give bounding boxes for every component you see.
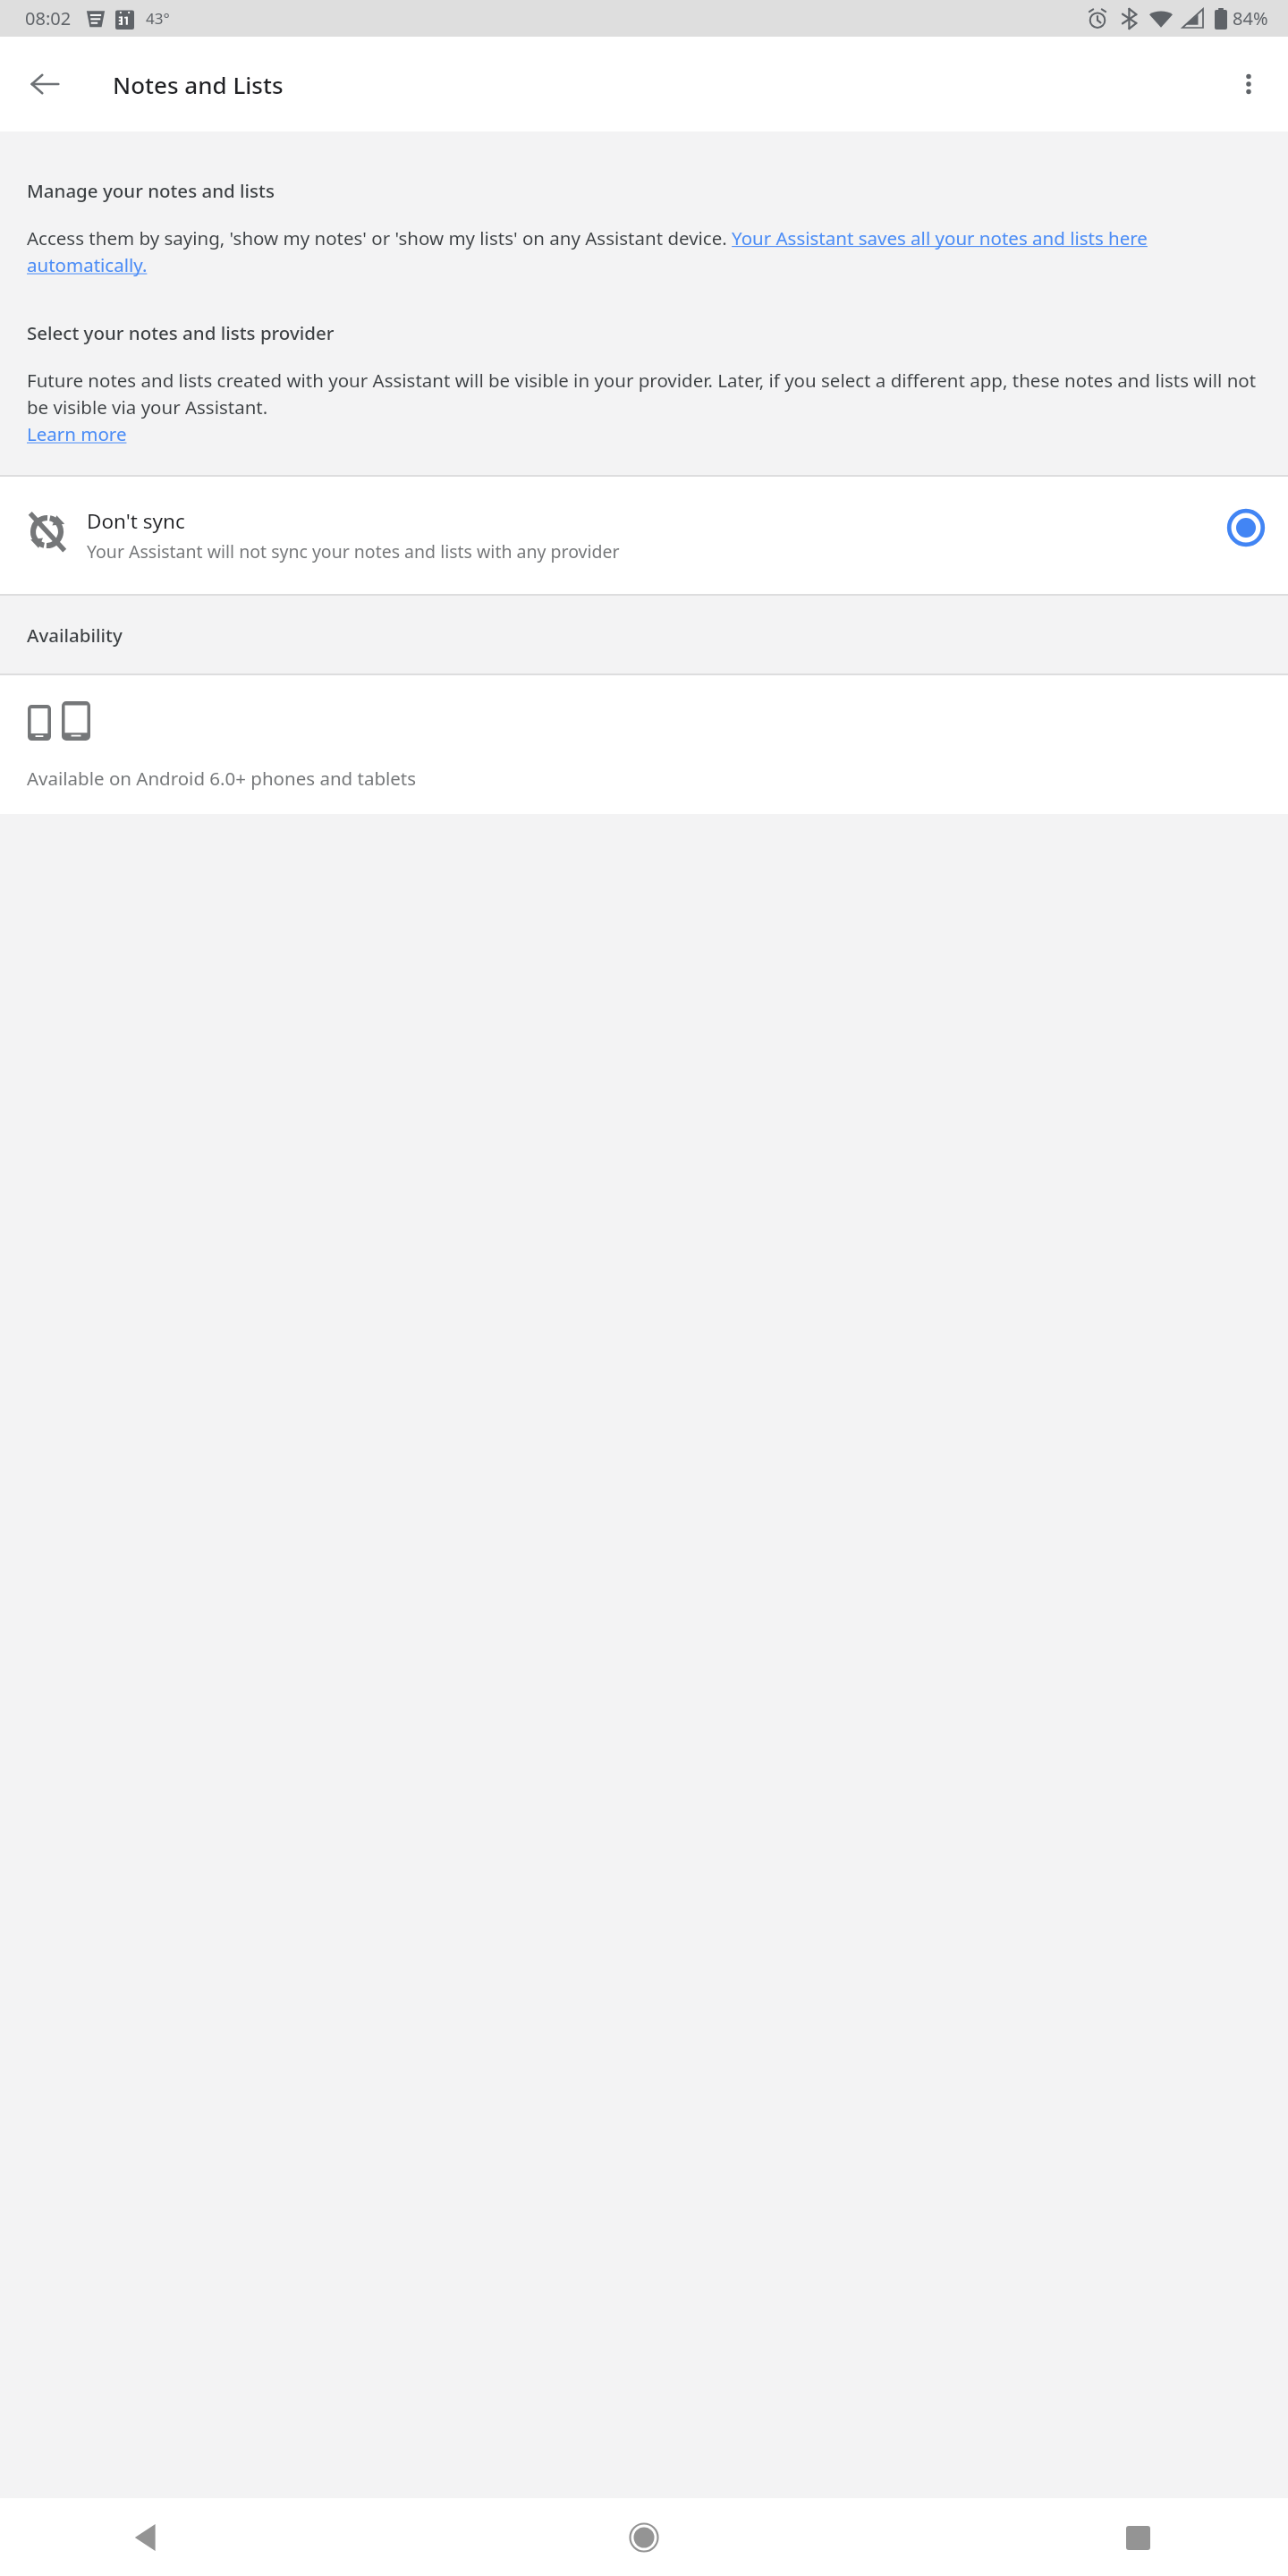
staticText: Notes and Lists (113, 69, 284, 100)
button[interactable]: Recent apps (1113, 2512, 1163, 2563)
button[interactable]: Future notes and lists created with your… (27, 368, 1275, 446)
button[interactable]: Don't sync (0, 477, 1288, 594)
staticText: 84% (1233, 6, 1268, 30)
staticText: Your Assistant will not sync your notes … (87, 539, 620, 563)
staticText: Select your notes and lists provider (27, 320, 335, 345)
button[interactable]: Home (619, 2512, 669, 2563)
staticText: Availability (27, 623, 123, 648)
button[interactable]: Back (122, 2512, 172, 2563)
staticText: Manage your notes and lists (27, 178, 275, 203)
other: Don't sync selected (1227, 509, 1265, 547)
button[interactable]: Navigate up (20, 59, 70, 109)
button[interactable]: More options (1224, 59, 1274, 109)
staticText: 43° (146, 8, 170, 29)
staticText: 08:02 (25, 6, 72, 30)
staticText: Available on Android 6.0+ phones and tab… (27, 766, 417, 791)
button[interactable]: Access them by saying, 'show my notes' o… (27, 225, 1268, 277)
staticText: Don't sync (87, 507, 185, 535)
